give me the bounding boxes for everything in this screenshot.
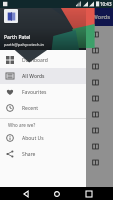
staticText: Favourites xyxy=(22,89,47,96)
staticText: About Us xyxy=(22,135,44,142)
staticText: Recent xyxy=(22,105,39,112)
button[interactable]: Recents xyxy=(82,187,95,200)
staticText: parth@pahycotech.in xyxy=(4,42,45,47)
button[interactable] xyxy=(0,122,113,138)
button[interactable] xyxy=(0,106,113,122)
button[interactable] xyxy=(0,74,113,90)
staticText: Dashboard xyxy=(22,57,48,64)
button[interactable]: Favourites xyxy=(0,84,86,100)
button[interactable]: Home xyxy=(50,187,63,200)
staticText: Who are we? xyxy=(8,122,36,128)
button[interactable] xyxy=(0,42,113,58)
button[interactable]: Share xyxy=(0,146,86,162)
button[interactable]: About Us xyxy=(0,130,86,146)
button[interactable]: Dashboard xyxy=(0,52,86,68)
button[interactable]: Profile xyxy=(4,9,18,23)
staticText: Share xyxy=(22,151,36,158)
button[interactable] xyxy=(0,154,113,170)
staticText: Parth Patel xyxy=(4,34,31,41)
button[interactable] xyxy=(0,26,113,42)
button[interactable] xyxy=(0,90,113,106)
button[interactable]: All Words xyxy=(0,68,86,84)
button[interactable]: Back xyxy=(19,187,32,200)
button[interactable] xyxy=(0,138,113,154)
staticText: Words xyxy=(92,13,111,21)
button[interactable] xyxy=(0,58,113,74)
button[interactable]: Recent xyxy=(0,100,86,116)
staticText: 10:43 xyxy=(100,1,112,7)
staticText: All Words xyxy=(22,73,45,80)
